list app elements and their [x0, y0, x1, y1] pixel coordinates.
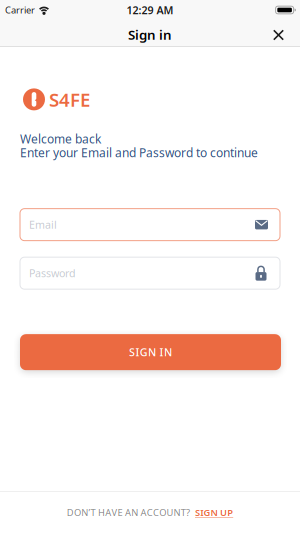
button[interactable]: Email [20, 209, 280, 241]
button[interactable]: SIGN UP [195, 506, 233, 519]
staticText: SIGN UP [195, 506, 233, 519]
staticText: Sign in [128, 26, 172, 43]
staticText: Welcome back [20, 131, 101, 147]
button[interactable]: Password [20, 257, 280, 289]
staticText: DON’T HAVE AN ACCOUNT? [67, 506, 190, 519]
button[interactable]: Close [273, 20, 300, 45]
staticText: Email [29, 218, 57, 232]
staticText: Password [29, 266, 76, 280]
staticText: 12:29 AM [126, 3, 173, 17]
staticText: SIGN IN [129, 345, 172, 359]
staticText: Enter your Email and Password to continu… [20, 145, 258, 161]
staticText: S4FE [49, 87, 90, 112]
button[interactable]: SIGN IN [20, 334, 281, 370]
staticText: Carrier [5, 4, 35, 16]
